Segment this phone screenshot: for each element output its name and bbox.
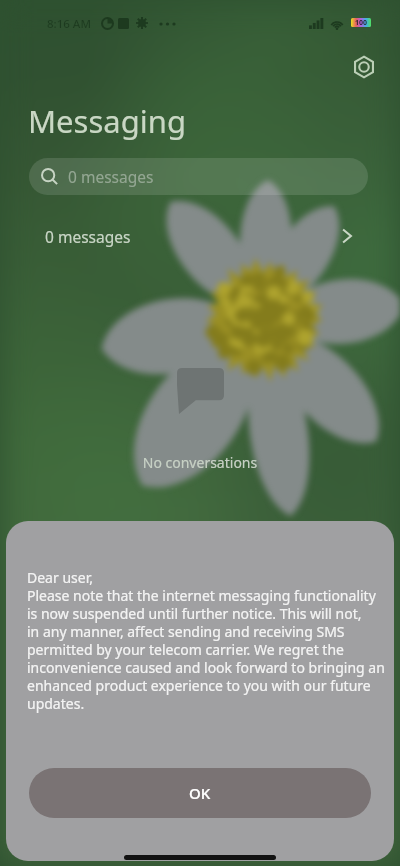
staticText: OK: [189, 783, 211, 803]
button[interactable]: 0 messages: [0, 215, 400, 257]
button[interactable]: 0 messages: [29, 158, 368, 195]
staticText: Messaging: [28, 100, 186, 142]
staticText: No conversations: [0, 453, 400, 472]
button[interactable]: OK: [29, 768, 371, 818]
staticText: 0 messages: [68, 166, 154, 187]
staticText: Dear user, Please note that the internet…: [27, 568, 385, 713]
staticText: 8:16 AM: [47, 16, 91, 32]
staticText: 0 messages: [45, 226, 131, 247]
button[interactable]: Settings: [343, 46, 384, 87]
staticText: 100: [355, 18, 368, 27]
